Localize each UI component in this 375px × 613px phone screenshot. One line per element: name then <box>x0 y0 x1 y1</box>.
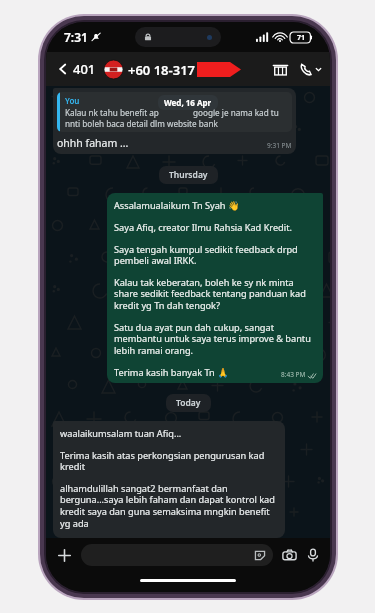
staticText: Saya Afiq, creator Ilmu Rahsia Kad Kredi… <box>114 221 292 234</box>
staticText: Terima kasih banyak Tn 🙏 <box>114 366 229 379</box>
button[interactable]: Attach <box>56 547 73 564</box>
other: Stickers <box>254 549 266 561</box>
button[interactable]: +60 18-317 <box>104 60 272 79</box>
staticText: ohhh faham ... <box>57 136 129 150</box>
button[interactable]: Business catalog <box>272 61 289 78</box>
button[interactable]: Assalamualaikum Tn Syah 👋 <box>107 193 323 383</box>
staticText: Saya tengah kumpul sedikit feedback drpd… <box>114 243 316 267</box>
button[interactable]: Back <box>54 56 98 82</box>
staticText: waalaikumsalam tuan Afiq... <box>60 427 182 440</box>
staticText: Thursday <box>169 169 208 181</box>
button[interactable]: Stickers <box>81 544 273 566</box>
button[interactable]: You <box>53 88 296 154</box>
staticText: Kalau tak keberatan, boleh ke sy nk mint… <box>114 276 316 312</box>
button[interactable]: Voice message <box>306 548 320 562</box>
staticText: alhamdulillah sangat2 bermanfaat dan ber… <box>60 482 278 530</box>
staticText: You <box>65 95 80 106</box>
button[interactable]: Camera <box>282 548 297 563</box>
staticText: 401 <box>73 60 96 78</box>
staticText: Kalau nk tahu benefit ap google je nama … <box>65 107 287 129</box>
staticText: 9:31 PM <box>267 141 292 150</box>
button[interactable]: waalaikumsalam tuan Afiq... <box>53 421 285 538</box>
button[interactable]: Call <box>299 62 322 77</box>
staticText: 8:43 PM <box>281 370 306 379</box>
other: Back <box>56 62 70 76</box>
staticText: 71 <box>297 33 306 43</box>
staticText: +60 18-317 <box>128 61 196 79</box>
staticText: Wed, 16 Apr <box>164 97 212 108</box>
staticText: Terima kasih atas perkongsian pengurusan… <box>60 449 278 473</box>
staticText: 7:31 <box>64 29 88 45</box>
staticText: Assalamualaikum Tn Syah 👋 <box>114 199 240 212</box>
staticText: Today <box>176 397 201 409</box>
staticText: Satu dua ayat pun dah cukup, sangat memb… <box>114 321 316 357</box>
